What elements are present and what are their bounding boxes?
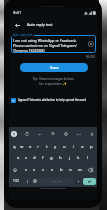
button[interactable]: sticker — [50, 131, 56, 137]
staticText: s — [25, 155, 28, 161]
staticText: Auto reply text — [27, 22, 53, 27]
button[interactable]: Space — [39, 178, 74, 185]
button[interactable]: t — [42, 141, 51, 153]
button[interactable]: p — [87, 141, 96, 153]
button[interactable]: c — [39, 164, 48, 176]
staticText: f — [42, 155, 44, 161]
button[interactable]: k — [74, 152, 83, 164]
button[interactable]: Emoji — [31, 175, 39, 187]
staticText: Please contact me on Signal/Telegram/ — [13, 43, 77, 48]
button[interactable]: d — [30, 152, 38, 164]
staticText: b — [60, 167, 63, 173]
staticText: r — [37, 144, 39, 150]
button[interactable]: dots — [76, 131, 82, 137]
staticText: I am not using WhatsApp or Facebook. — [13, 38, 77, 43]
button[interactable]: Shift — [9, 164, 21, 176]
staticText: q — [13, 144, 16, 150]
button[interactable]: j — [65, 152, 74, 164]
button[interactable]: n — [66, 164, 75, 176]
button[interactable]: gear — [63, 131, 69, 137]
button[interactable]: v — [48, 164, 57, 176]
button[interactable]: ?123 — [9, 175, 23, 187]
button[interactable]: b — [57, 164, 66, 176]
staticText: l — [87, 155, 89, 161]
button[interactable]: Enter — [83, 178, 96, 185]
button[interactable]: Period — [74, 175, 82, 187]
button[interactable]: z — [21, 164, 30, 176]
staticText: g — [50, 155, 53, 161]
button[interactable]: Comma — [23, 175, 31, 187]
staticText: o — [81, 144, 84, 150]
staticText: h — [59, 155, 62, 161]
staticText: c — [42, 167, 45, 173]
staticText: t — [46, 144, 48, 150]
button[interactable]: y — [51, 141, 60, 153]
staticText: m — [78, 167, 82, 173]
button[interactable]: Expand toolbar — [11, 131, 17, 137]
button[interactable]: Backspace — [84, 164, 97, 176]
button[interactable]: clipboard — [24, 131, 30, 137]
button[interactable]: Back — [13, 21, 21, 29]
button[interactable]: gif — [37, 131, 43, 137]
staticText: e — [29, 144, 32, 150]
button[interactable]: e — [26, 141, 34, 153]
button[interactable]: g — [47, 152, 56, 164]
button[interactable]: s — [22, 152, 30, 164]
button[interactable]: x — [30, 164, 39, 176]
button[interactable]: Save — [20, 63, 88, 72]
staticText: 90/300 — [86, 55, 96, 59]
button[interactable]: Append Flatmarks attribution to help spr… — [11, 97, 95, 103]
staticText: x — [33, 167, 36, 173]
button[interactable]: m — [75, 164, 84, 176]
staticText: 9:41 — [13, 10, 22, 16]
staticText: j — [69, 155, 71, 161]
button[interactable]: h — [56, 152, 65, 164]
staticText: d — [33, 155, 36, 161]
button[interactable]: a — [14, 152, 22, 164]
staticText: Save — [50, 65, 59, 70]
staticText: EN • FR — [53, 180, 61, 183]
staticText: p — [90, 144, 93, 150]
button[interactable]: i — [69, 141, 78, 153]
staticText: v — [51, 167, 54, 173]
staticText: n — [69, 167, 72, 173]
staticText: y — [54, 144, 57, 150]
staticText: Tip: View messages below for inspiration… — [9, 76, 97, 86]
staticText: u — [63, 144, 66, 150]
staticText: a — [17, 155, 20, 161]
button[interactable]: w — [18, 141, 26, 153]
button[interactable]: f — [38, 152, 47, 164]
button[interactable]: I am not using WhatsApp or Facebook. — [11, 35, 96, 53]
staticText: Append Flatmarks attribution to help spr… — [18, 98, 87, 102]
staticText: ?123 — [13, 179, 19, 183]
staticText: Auto reply text — [13, 33, 33, 37]
button[interactable]: u — [60, 141, 69, 153]
staticText: Threema 18343680 — [13, 48, 45, 53]
staticText: i — [73, 144, 75, 150]
staticText: z — [25, 167, 27, 173]
button[interactable]: l — [83, 152, 92, 164]
button[interactable]: o — [78, 141, 87, 153]
staticText: GIF — [38, 133, 42, 136]
button[interactable]: mic — [89, 131, 95, 137]
button[interactable]: q — [10, 141, 18, 153]
button[interactable]: r — [34, 141, 42, 153]
button[interactable]: Clear text — [88, 41, 94, 47]
staticText: w — [20, 144, 24, 150]
staticText: k — [77, 155, 80, 161]
